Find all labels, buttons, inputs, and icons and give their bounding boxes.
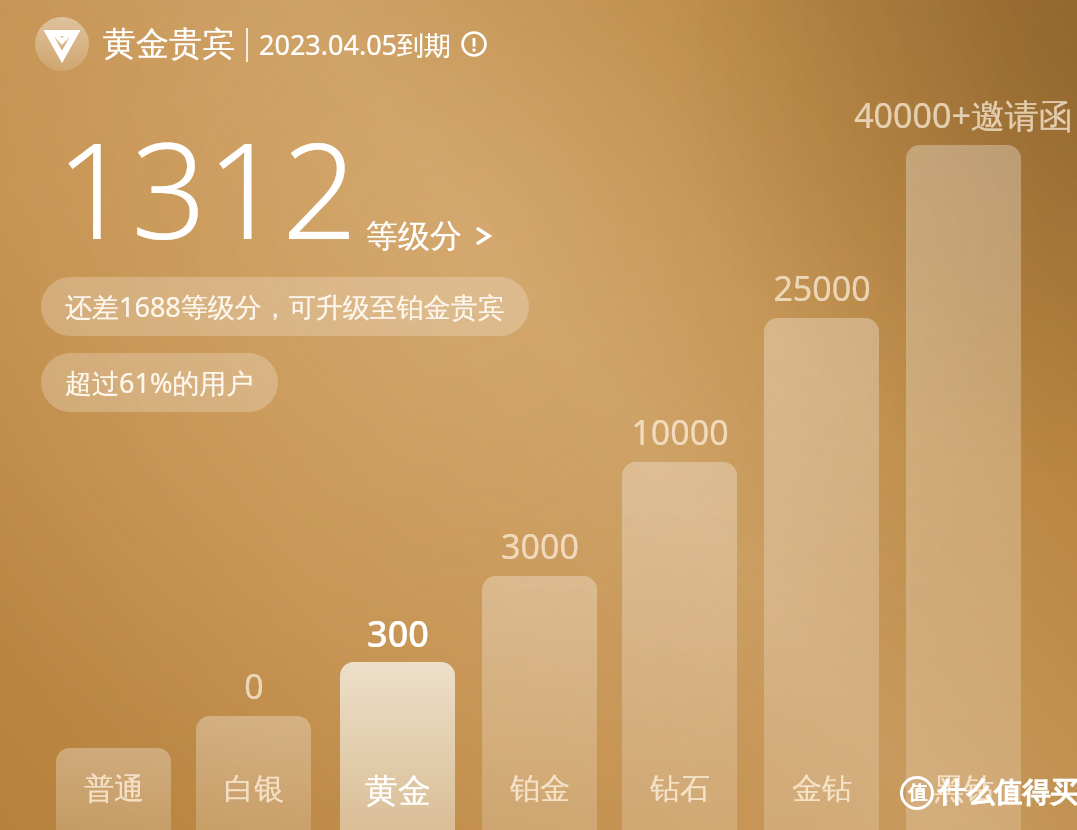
staticText: 1312: [56, 98, 358, 278]
staticText: 10000: [631, 409, 729, 455]
button[interactable]: [622, 462, 737, 830]
button[interactable]: [196, 716, 311, 830]
staticText: 白银: [224, 770, 284, 808]
staticText: 等级分: [366, 216, 462, 256]
staticText: 3000: [501, 523, 579, 569]
button[interactable]: 还差1688等级分，可升级至铂金贵宾: [41, 277, 529, 336]
staticText: 铂金: [510, 770, 570, 808]
button[interactable]: 超过61%的用户: [41, 353, 278, 412]
staticText: 什么值得买: [938, 775, 1077, 810]
other: VIP level badge: [35, 17, 89, 71]
other: View level score details: [474, 222, 492, 250]
other: Expiry info: [461, 31, 487, 57]
button[interactable]: [56, 748, 171, 830]
staticText: 超过61%的用户: [65, 364, 254, 401]
button[interactable]: [340, 662, 455, 830]
staticText: 普通: [84, 770, 144, 808]
button[interactable]: [482, 576, 597, 830]
button[interactable]: [764, 318, 879, 830]
staticText: 黄金: [365, 770, 431, 812]
button[interactable]: 1312: [56, 98, 492, 278]
staticText: 还差1688等级分，可升级至铂金贵宾: [65, 288, 505, 325]
staticText: 金钻: [792, 770, 852, 808]
staticText: 300: [367, 609, 429, 658]
staticText: 值: [908, 781, 927, 805]
staticText: 钻石: [650, 770, 710, 808]
staticText: 黄金贵宾: [103, 23, 235, 65]
staticText: 2023.04.05到期: [259, 26, 452, 63]
staticText: 25000: [773, 265, 871, 311]
staticText: 40000+邀请函: [854, 92, 1073, 138]
staticText: 0: [244, 663, 264, 709]
button[interactable]: VIP level badge: [33, 15, 489, 73]
staticText: 黑钻: [934, 770, 994, 808]
button[interactable]: [906, 145, 1021, 830]
